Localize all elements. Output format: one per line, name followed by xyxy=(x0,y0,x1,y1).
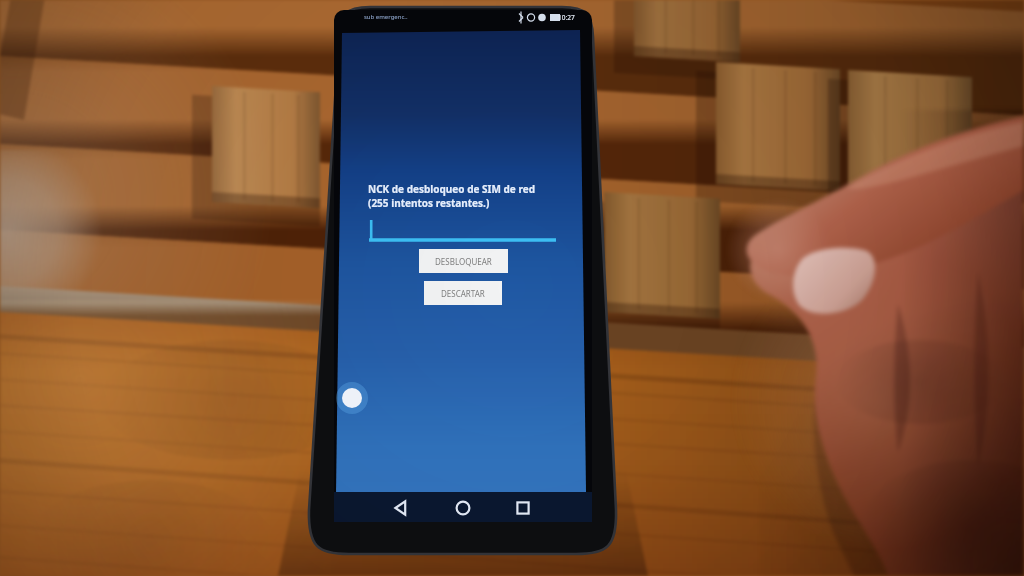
button[interactable]: DESBLOQUEAR xyxy=(419,249,508,273)
staticText: NCK de desbloqueo de SIM de red xyxy=(368,182,535,196)
button[interactable]: DESCARTAR xyxy=(424,281,502,305)
staticText: sub emergenc.. xyxy=(364,13,408,21)
button[interactable]: Recents xyxy=(510,495,536,521)
staticText: (255 intentos restantes.) xyxy=(368,196,490,210)
staticText: DESBLOQUEAR xyxy=(435,256,492,267)
button[interactable]: Back xyxy=(388,495,414,521)
staticText: DESCARTAR xyxy=(441,288,485,299)
button[interactable]: Home xyxy=(450,495,476,521)
staticText: 10:27 xyxy=(558,13,575,22)
